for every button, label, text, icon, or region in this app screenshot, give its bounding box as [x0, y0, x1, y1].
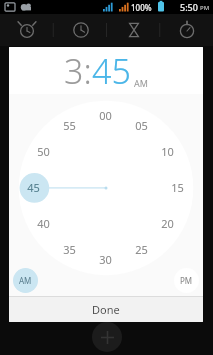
button[interactable]: 10: [161, 144, 174, 159]
staticText: 05: [135, 118, 148, 133]
button[interactable]: Stopwatch: [160, 14, 213, 46]
button[interactable]: Done: [9, 297, 203, 322]
staticText: 100%: [131, 2, 152, 13]
button[interactable]: 45: [27, 180, 40, 195]
button[interactable]: 55: [63, 118, 76, 133]
button[interactable]: 25: [135, 242, 148, 257]
staticText: 10: [161, 144, 174, 159]
staticText: 45: [27, 180, 40, 195]
staticText: 3:: [64, 48, 92, 94]
staticText: 35: [63, 242, 76, 257]
button[interactable]: Alarm: [0, 14, 54, 46]
button[interactable]: 20: [161, 216, 174, 231]
button[interactable]: 05: [135, 118, 148, 133]
button[interactable]: Add alarm: [92, 322, 122, 352]
staticText: PM: [180, 275, 193, 286]
staticText: PM: [200, 4, 210, 12]
staticText: 30: [99, 252, 112, 267]
staticText: 50: [37, 144, 50, 159]
staticText: 25: [135, 242, 148, 257]
button[interactable]: 15: [171, 180, 184, 195]
button[interactable]: 00: [99, 108, 112, 123]
staticText: 5:50: [180, 1, 198, 13]
staticText: AM: [19, 275, 32, 286]
button[interactable]: PM: [174, 268, 199, 293]
staticText: Done: [92, 302, 120, 317]
staticText: 40: [37, 216, 50, 231]
button[interactable]: 40: [37, 216, 50, 231]
staticText: AM: [134, 77, 148, 89]
button[interactable]: AM: [13, 268, 38, 293]
staticText: 00: [99, 108, 112, 123]
button[interactable]: Timer: [107, 14, 160, 46]
staticText: 55: [63, 118, 76, 133]
staticText: 20: [161, 216, 174, 231]
staticText: 45: [92, 48, 131, 94]
button[interactable]: 30: [99, 252, 112, 267]
button[interactable]: 50: [37, 144, 50, 159]
staticText: 15: [171, 180, 184, 195]
button[interactable]: Clock: [54, 14, 107, 46]
button[interactable]: 35: [63, 242, 76, 257]
